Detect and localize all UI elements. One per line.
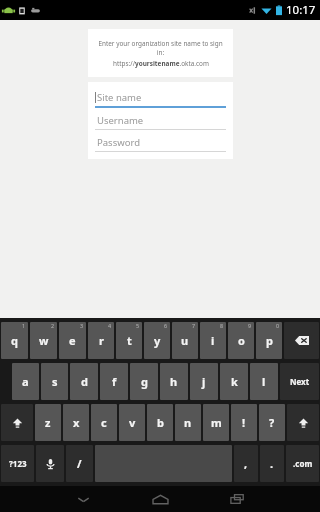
staticText: https://yoursitename.okta.com — [113, 59, 209, 68]
staticText: c — [101, 415, 107, 430]
button[interactable]: Username — [95, 111, 226, 130]
staticText: 8 — [220, 322, 224, 329]
staticText: Password — [97, 136, 140, 149]
button[interactable]: shift — [1, 404, 33, 441]
staticText: s — [52, 374, 58, 389]
button[interactable]: i — [200, 322, 226, 359]
staticText: 9 — [248, 322, 252, 329]
button[interactable]: e — [59, 322, 86, 359]
staticText: u — [181, 333, 189, 348]
staticText: ?123 — [9, 458, 27, 469]
staticText: q — [11, 333, 18, 348]
staticText: m — [211, 415, 222, 430]
staticText: f — [112, 374, 117, 389]
button[interactable]: mic — [36, 445, 64, 482]
staticText: y — [154, 333, 161, 348]
button[interactable]: o — [228, 322, 254, 359]
button[interactable]: b — [147, 404, 173, 441]
button[interactable]: , — [234, 445, 258, 482]
button[interactable]: .com — [286, 445, 319, 482]
staticText: , — [244, 456, 248, 471]
staticText: Next — [290, 376, 310, 387]
button[interactable]: r — [88, 322, 114, 359]
staticText: h — [170, 374, 178, 389]
staticText: r — [99, 333, 104, 348]
button[interactable]: v — [119, 404, 145, 441]
staticText: x — [73, 415, 80, 430]
staticText: j — [202, 374, 206, 389]
button[interactable]: d — [70, 363, 98, 400]
button[interactable]: Recent apps — [214, 486, 260, 512]
staticText: 2 — [51, 322, 55, 329]
staticText: a — [22, 374, 29, 389]
button[interactable]: t — [116, 322, 142, 359]
button[interactable]: Password — [95, 133, 226, 152]
button[interactable]: a — [12, 363, 39, 400]
staticText: ! — [242, 415, 246, 430]
staticText: 4 — [108, 322, 112, 329]
button[interactable]: shift — [287, 404, 319, 441]
button[interactable]: y — [144, 322, 170, 359]
button[interactable]: . — [260, 445, 284, 482]
staticText: 6 — [164, 322, 168, 329]
staticText: v — [129, 415, 136, 430]
staticText: i — [211, 333, 215, 348]
button[interactable]: f — [100, 363, 128, 400]
button[interactable]: h — [160, 363, 188, 400]
button[interactable]: / — [66, 445, 93, 482]
staticText: Site name — [97, 91, 142, 104]
button[interactable]: k — [220, 363, 248, 400]
staticText: 1 — [22, 322, 26, 329]
staticText: Enter your organization site name to sig… — [94, 39, 227, 57]
staticText: 7 — [192, 322, 196, 329]
button[interactable]: l — [250, 363, 278, 400]
staticText: e — [69, 333, 76, 348]
button[interactable]: s — [41, 363, 68, 400]
staticText: z — [45, 415, 51, 430]
staticText: k — [231, 374, 238, 389]
staticText: 3 — [80, 322, 84, 329]
staticText: d — [81, 374, 88, 389]
button[interactable]: backspace — [284, 322, 319, 359]
button[interactable]: ! — [231, 404, 257, 441]
button[interactable]: u — [172, 322, 198, 359]
staticText: g — [141, 374, 148, 389]
button[interactable]: n — [175, 404, 201, 441]
button[interactable]: j — [190, 363, 218, 400]
button[interactable]: Hide keyboard — [60, 486, 106, 512]
button[interactable]: ? — [259, 404, 285, 441]
button[interactable]: ?123 — [1, 445, 34, 482]
staticText: . — [270, 456, 274, 471]
button[interactable]: z — [35, 404, 61, 441]
button[interactable]: m — [203, 404, 229, 441]
button[interactable]: q — [1, 322, 28, 359]
staticText: b — [157, 415, 164, 430]
staticText: Username — [97, 114, 144, 127]
staticText: t — [127, 333, 132, 348]
staticText: n — [184, 415, 192, 430]
staticText: l — [262, 374, 266, 389]
staticText: 10:17 — [286, 2, 316, 18]
button[interactable]: c — [91, 404, 117, 441]
button[interactable]: Site name — [95, 88, 226, 108]
button[interactable]: x — [63, 404, 89, 441]
button[interactable]: Home — [137, 486, 183, 512]
button[interactable]: w — [30, 322, 57, 359]
staticText: w — [39, 333, 49, 348]
staticText: / — [77, 456, 82, 471]
button[interactable]: g — [130, 363, 158, 400]
button[interactable]: p — [256, 322, 282, 359]
button[interactable]: Next — [280, 363, 319, 400]
staticText: o — [238, 333, 245, 348]
staticText: p — [266, 333, 273, 348]
staticText: 5 — [136, 322, 140, 329]
staticText: ? — [269, 415, 275, 430]
staticText: .com — [293, 458, 313, 469]
staticText: 0 — [276, 322, 280, 329]
